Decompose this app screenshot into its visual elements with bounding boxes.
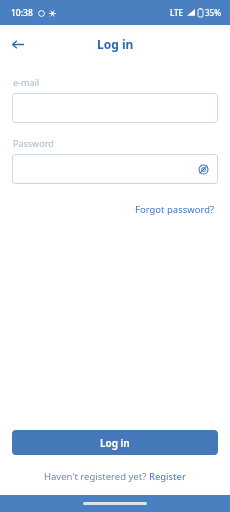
staticText: Forgot password?: [135, 203, 215, 216]
staticText: 35%: [205, 7, 221, 18]
staticText: Haven't registered yet?: [44, 470, 149, 483]
button[interactable]: Forgot password?: [133, 200, 217, 219]
staticText: e-mail: [13, 76, 40, 88]
button[interactable]: Show password: [12, 154, 218, 184]
staticText: Password: [13, 137, 54, 149]
staticText: LTE: [170, 7, 184, 18]
button[interactable]: [12, 93, 218, 123]
button[interactable]: Haven't registered yet?: [40, 468, 190, 485]
staticText: 10:38: [11, 7, 33, 19]
staticText: Log in: [100, 436, 130, 450]
staticText: Log in: [97, 36, 134, 52]
button[interactable]: Back: [5, 32, 29, 56]
button[interactable]: Show password: [193, 159, 213, 179]
button[interactable]: Log in: [12, 430, 218, 455]
staticText: Register: [149, 470, 186, 483]
